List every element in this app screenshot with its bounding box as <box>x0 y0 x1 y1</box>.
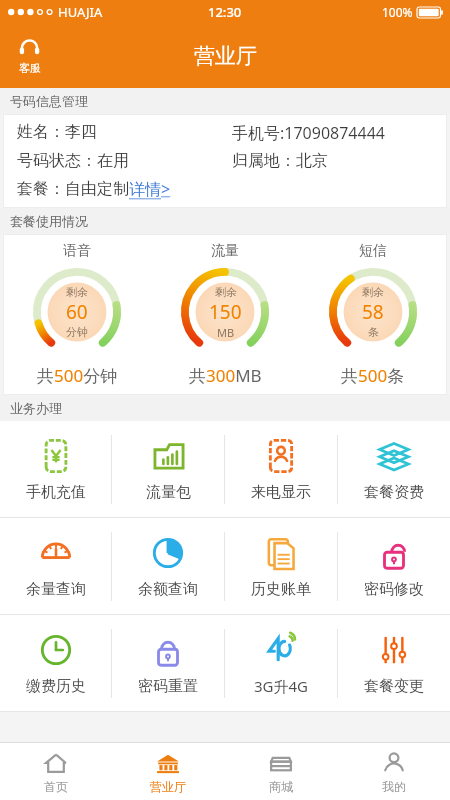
staticText: 100% <box>382 4 413 20</box>
staticText: 流量包 <box>146 483 191 502</box>
staticText: 号码状态：在用 <box>17 151 129 171</box>
staticText: 商城 <box>269 779 293 794</box>
staticText: 历史账单 <box>251 580 311 599</box>
button[interactable]: 余额查询 <box>112 518 224 614</box>
button[interactable]: 短信 <box>299 242 447 387</box>
staticText: 密码重置 <box>138 677 198 696</box>
staticText: 58 <box>362 299 384 325</box>
staticText: 业务办理 <box>10 400 62 416</box>
staticText: 剩余 <box>66 285 88 299</box>
staticText: 号码信息管理 <box>10 93 88 109</box>
button[interactable]: 密码修改 <box>338 518 450 614</box>
button[interactable]: 详情> <box>129 178 171 200</box>
button[interactable]: 手机充值 <box>0 421 111 517</box>
staticText: 60 <box>66 299 88 325</box>
staticText: 套餐：自由定制 <box>17 179 129 199</box>
button[interactable]: 语音 <box>3 242 151 387</box>
staticText: 姓名：李四 <box>17 122 97 142</box>
button[interactable]: 历史账单 <box>225 518 337 614</box>
staticText: 3G升4G <box>254 676 309 696</box>
staticText: 套餐使用情况 <box>10 213 88 229</box>
button[interactable]: 套餐资费 <box>338 421 450 517</box>
staticText: HUAJIA <box>58 3 103 21</box>
staticText: 剩余 <box>362 285 384 299</box>
staticText: 密码修改 <box>364 580 424 599</box>
staticText: 余额查询 <box>138 580 198 599</box>
staticText: MB <box>217 325 235 340</box>
staticText: 共500条 <box>341 364 405 387</box>
staticText: 手机充值 <box>26 483 86 502</box>
button[interactable]: 营业厅 <box>112 743 224 800</box>
staticText: 语音 <box>63 242 91 260</box>
button[interactable]: 来电显示 <box>225 421 337 517</box>
button[interactable]: 首页 <box>0 743 112 800</box>
staticText: 首页 <box>44 779 68 794</box>
staticText: 12:30 <box>208 3 242 21</box>
button[interactable]: 缴费历史 <box>0 615 111 711</box>
staticText: 来电显示 <box>251 483 311 502</box>
staticText: 短信 <box>359 242 387 260</box>
staticText: 分钟 <box>66 325 88 339</box>
button[interactable]: 商城 <box>224 743 337 800</box>
staticText: 共500分钟 <box>37 364 118 387</box>
staticText: 共300MB <box>189 364 262 387</box>
staticText: 我的 <box>382 779 406 794</box>
button[interactable]: 3G升4G <box>225 615 337 711</box>
button[interactable]: 密码重置 <box>112 615 224 711</box>
staticText: 详情> <box>129 178 171 200</box>
button[interactable]: 余量查询 <box>0 518 111 614</box>
staticText: 流量 <box>211 242 239 260</box>
button[interactable]: 流量包 <box>112 421 224 517</box>
staticText: 150 <box>209 299 242 325</box>
button[interactable]: 我的 <box>337 743 450 800</box>
staticText: 手机号:17090874444 <box>232 122 385 144</box>
staticText: 剩余 <box>215 285 237 299</box>
button[interactable]: 客服 Customer service <box>14 35 45 77</box>
staticText: 缴费历史 <box>26 677 86 696</box>
button[interactable]: 流量 <box>151 242 299 387</box>
staticText: 营业厅 <box>150 779 186 794</box>
staticText: 余量查询 <box>26 580 86 599</box>
staticText: 归属地：北京 <box>232 151 328 171</box>
staticText: 条 <box>368 325 379 339</box>
staticText: 套餐变更 <box>364 677 424 696</box>
staticText: 营业厅 <box>194 43 257 69</box>
button[interactable]: 套餐变更 <box>338 615 450 711</box>
staticText: 套餐资费 <box>364 483 424 502</box>
staticText: 客服 <box>19 61 41 75</box>
